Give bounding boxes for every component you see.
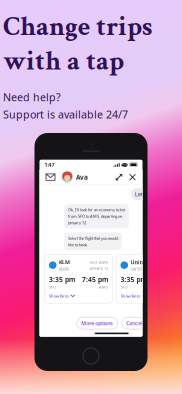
- staticText: AMS: [99, 284, 108, 290]
- button[interactable]: Lets go!: [131, 188, 158, 200]
- button[interactable]: Show fares: [49, 290, 75, 299]
- staticText: January 12: [90, 265, 108, 271]
- staticText: UA927: [130, 266, 142, 271]
- staticText: with a tap: [3, 43, 124, 79]
- staticText: 1:47: [44, 161, 54, 168]
- staticText: SFO: [120, 284, 127, 290]
- button[interactable]: More options: [77, 317, 118, 329]
- staticText: Ava: [76, 173, 88, 182]
- staticText: KL605: [59, 266, 69, 271]
- staticText: like to book.: [68, 242, 88, 247]
- staticText: 7:45 pm: [82, 275, 108, 284]
- staticText: More options: [81, 320, 113, 327]
- staticText: Show fares: [49, 293, 69, 299]
- button[interactable]: Expand: [114, 172, 124, 182]
- staticText: Change trips: [3, 9, 152, 44]
- staticText: Lets go!: [135, 191, 154, 198]
- staticText: United: [130, 259, 147, 266]
- staticText: Need help?: [3, 90, 61, 104]
- staticText: KLM: [59, 259, 70, 266]
- staticText: Cancel: [126, 320, 142, 327]
- staticText: from SFO to AMS, departing on: [68, 214, 122, 219]
- staticText: 7:45 pm: [153, 275, 179, 284]
- button[interactable]: Cancel: [122, 317, 147, 329]
- button[interactable]: Show fares: [120, 290, 147, 299]
- staticText: 3:35 pm: [120, 275, 146, 284]
- staticText: SFO: [49, 284, 56, 290]
- staticText: January 12.: [68, 220, 87, 225]
- staticText: Ok, I'll look for an economy ticket: [68, 207, 125, 212]
- staticText: Support is available 24/7: [3, 107, 128, 121]
- staticText: SFO AMS: [90, 260, 108, 265]
- button[interactable]: Close: [127, 172, 137, 182]
- button[interactable]: Inbox: [44, 171, 56, 184]
- staticText: 3:35 pm: [49, 275, 75, 284]
- staticText: Show fares: [120, 293, 140, 299]
- staticText: Select the flight that you would: [68, 235, 118, 241]
